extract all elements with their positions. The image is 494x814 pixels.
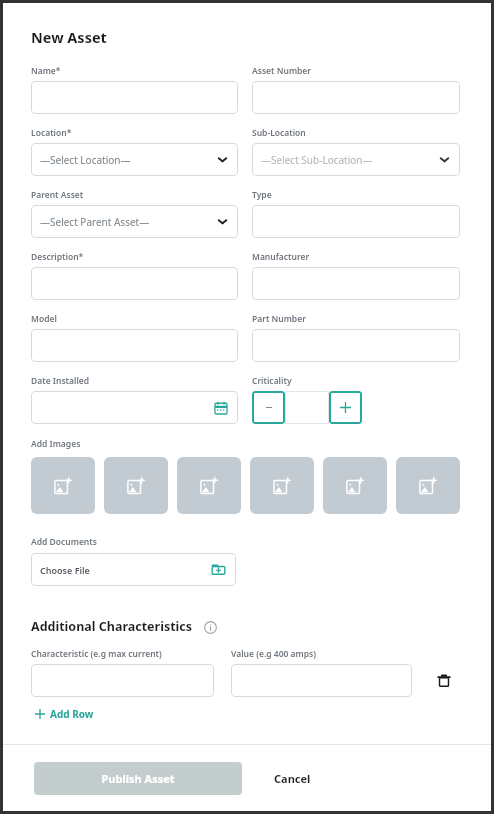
staticText: —Select Sub-Location—	[261, 153, 373, 167]
staticText: Location*	[31, 127, 72, 139]
button[interactable]: Add image	[323, 457, 387, 514]
staticText: New Asset	[31, 27, 107, 47]
button[interactable]: More information	[203, 620, 217, 634]
button[interactable]	[252, 205, 460, 238]
staticText: Value (e.g 400 amps)	[231, 648, 316, 660]
staticText: Add Documents	[31, 536, 97, 548]
staticText: Type	[252, 189, 272, 201]
button[interactable]: Decrease criticality	[252, 391, 285, 424]
staticText: Add Row	[50, 707, 94, 721]
button[interactable]: Add image	[250, 457, 314, 514]
button[interactable]: Increase criticality	[329, 391, 362, 424]
button[interactable]: Pick date installed	[31, 391, 238, 424]
staticText: Name*	[31, 65, 61, 77]
button[interactable]	[231, 664, 412, 697]
button[interactable]	[31, 664, 214, 697]
button[interactable]: Add image	[177, 457, 241, 514]
button[interactable]: Add Row	[31, 704, 98, 724]
button[interactable]	[252, 81, 460, 114]
button[interactable]: Add image	[31, 457, 95, 514]
staticText: Parent Asset	[31, 189, 84, 201]
staticText: Publish Asset	[101, 771, 175, 786]
button[interactable]: Delete row	[427, 664, 460, 697]
button[interactable]	[31, 329, 238, 362]
button[interactable]	[252, 329, 460, 362]
staticText: Manufacturer	[252, 251, 310, 263]
button[interactable]: Add image	[104, 457, 168, 514]
button[interactable]	[252, 267, 460, 300]
staticText: Sub-Location	[252, 127, 306, 139]
staticText: Characteristic (e.g max current)	[31, 648, 162, 660]
staticText: Description*	[31, 251, 84, 263]
button[interactable]	[31, 81, 238, 114]
button[interactable]: Publish Asset	[34, 762, 242, 795]
staticText: Date Installed	[31, 375, 90, 387]
staticText: Add Images	[31, 438, 81, 450]
button[interactable]: Choose File	[31, 553, 236, 586]
staticText: Choose File	[40, 564, 90, 576]
button[interactable]: —Select Parent Asset—	[31, 205, 238, 238]
staticText: Part Number	[252, 313, 306, 325]
staticText: Criticality	[252, 375, 292, 387]
button[interactable]: —Select Sub-Location—	[252, 143, 460, 176]
button[interactable]: —Select Location—	[31, 143, 238, 176]
button[interactable]	[31, 267, 238, 300]
staticText: Cancel	[274, 771, 311, 786]
button[interactable]: Cancel	[268, 767, 317, 790]
button[interactable]: Add image	[396, 457, 460, 514]
staticText: Model	[31, 313, 57, 325]
staticText: Additional Characteristics	[31, 618, 193, 635]
staticText: —Select Location—	[40, 153, 131, 167]
staticText: Asset Number	[252, 65, 312, 77]
staticText: —Select Parent Asset—	[40, 215, 150, 229]
